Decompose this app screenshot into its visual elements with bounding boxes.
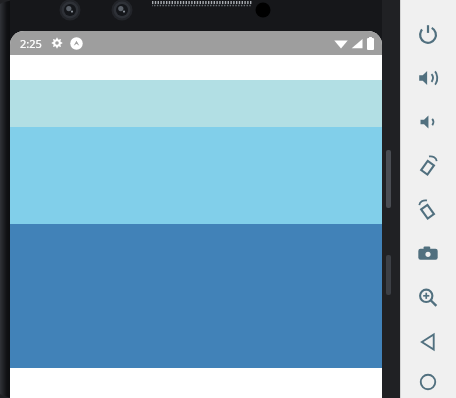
button[interactable]: Home [400, 365, 456, 398]
button[interactable]: Rotate right [400, 189, 456, 230]
other: Volume button [386, 255, 391, 295]
button[interactable]: Zoom [400, 277, 456, 318]
staticText: 2:25 [20, 36, 42, 51]
other: Power button [386, 150, 391, 208]
button[interactable]: Volume down [400, 101, 456, 142]
button[interactable]: Back [400, 321, 456, 362]
button[interactable]: Rotate left [400, 145, 456, 186]
button[interactable]: Power [400, 13, 456, 54]
button[interactable]: Volume up [400, 57, 456, 98]
button[interactable]: Take screenshot [400, 233, 456, 274]
